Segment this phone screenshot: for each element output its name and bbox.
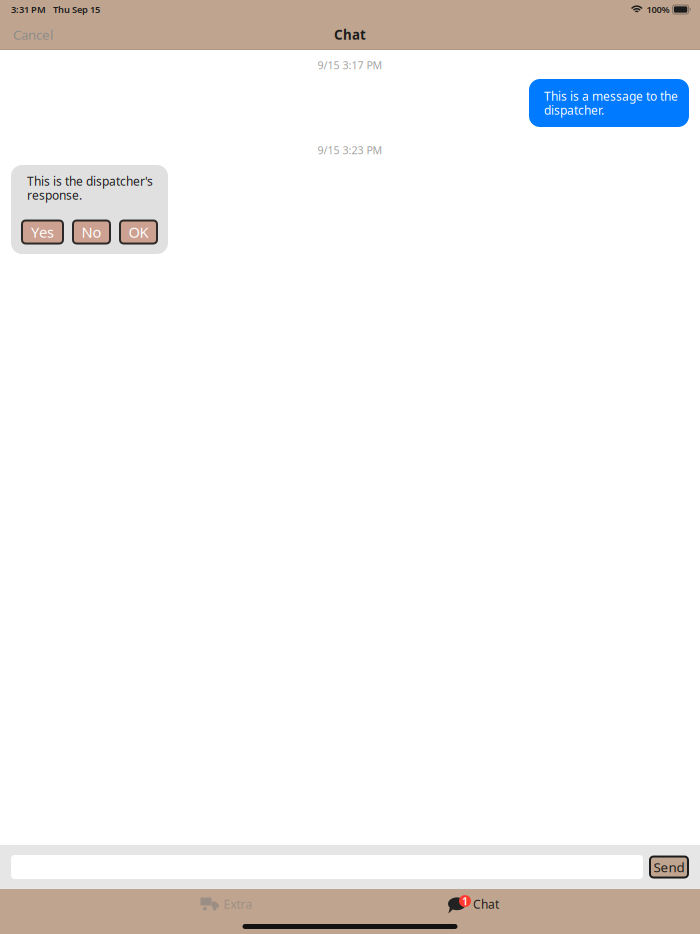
- staticText: This is a message to the: [544, 88, 678, 104]
- staticText: 1: [462, 894, 468, 908]
- staticText: Chat: [334, 26, 366, 43]
- staticText: 3:31 PM: [11, 3, 46, 16]
- staticText: 9/15 3:23 PM: [317, 143, 382, 157]
- staticText: response.: [27, 187, 82, 203]
- staticText: Chat: [473, 896, 499, 912]
- button[interactable]: 1: [411, 889, 535, 919]
- staticText: No: [81, 222, 101, 242]
- button[interactable]: Send: [650, 856, 688, 877]
- staticText: OK: [128, 222, 148, 242]
- button[interactable]: OK: [120, 220, 157, 243]
- staticText: This is the dispatcher's: [27, 173, 153, 189]
- staticText: Yes: [31, 222, 54, 242]
- button[interactable]: Cancel: [0, 19, 90, 49]
- staticText: 9/15 3:17 PM: [317, 58, 382, 72]
- staticText: 100%: [647, 3, 670, 16]
- button[interactable]: Yes: [22, 220, 63, 243]
- staticText: Cancel: [13, 26, 53, 43]
- staticText: Send: [653, 858, 684, 876]
- button[interactable]: Extra: [164, 889, 288, 919]
- staticText: dispatcher.: [544, 102, 604, 118]
- staticText: Extra: [223, 896, 252, 912]
- button[interactable]: No: [73, 220, 110, 243]
- staticText: Thu Sep 15: [53, 3, 100, 16]
